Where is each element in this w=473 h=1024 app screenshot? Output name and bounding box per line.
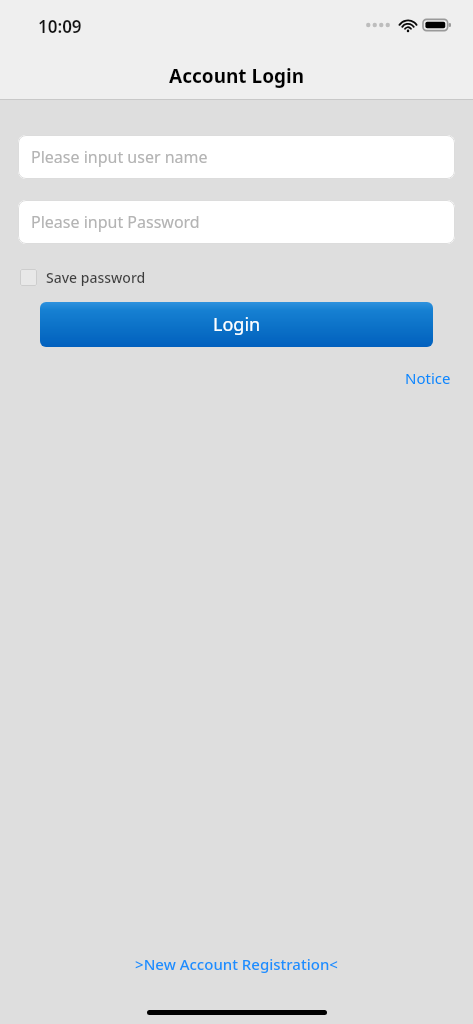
button[interactable]: Login xyxy=(40,302,433,347)
staticText: Account Login xyxy=(169,63,305,89)
button[interactable]: Please input user name xyxy=(18,135,455,179)
button[interactable]: Please input Password xyxy=(18,200,455,244)
button[interactable]: Save password xyxy=(18,264,148,291)
staticText: Login xyxy=(213,312,261,337)
staticText: Save password xyxy=(46,268,146,287)
staticText: Please input user name xyxy=(31,146,208,168)
staticText: 10:09 xyxy=(38,15,82,38)
staticText: Please input Password xyxy=(31,211,200,233)
button[interactable]: Notice xyxy=(397,364,473,392)
button[interactable]: >New Account Registration< xyxy=(121,946,352,982)
